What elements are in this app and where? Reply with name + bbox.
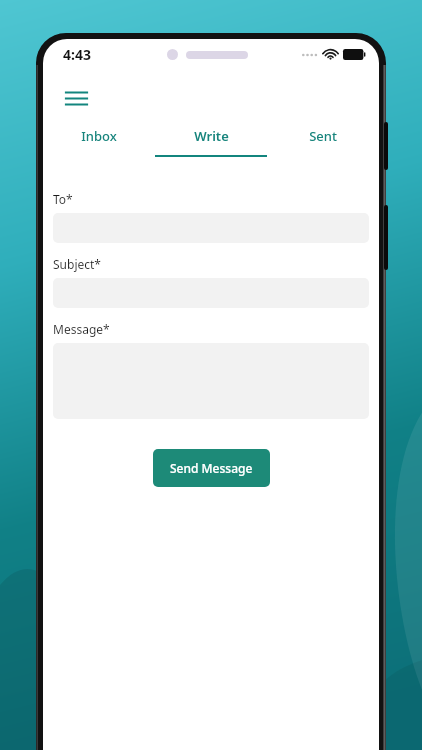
staticText: Sent bbox=[309, 127, 337, 145]
staticText: To* bbox=[53, 191, 73, 207]
button[interactable]: Send Message bbox=[153, 449, 270, 487]
button[interactable]: Write bbox=[155, 127, 267, 161]
staticText: Message* bbox=[53, 321, 110, 337]
button[interactable]: Sent bbox=[267, 127, 379, 161]
button[interactable]: Inbox bbox=[43, 127, 155, 161]
staticText: Subject* bbox=[53, 256, 101, 272]
staticText: Inbox bbox=[81, 127, 117, 145]
staticText: Send Message bbox=[170, 460, 253, 476]
staticText: Write bbox=[194, 127, 229, 145]
staticText: 4:43 bbox=[63, 45, 91, 64]
button[interactable]: Menu bbox=[59, 81, 93, 115]
